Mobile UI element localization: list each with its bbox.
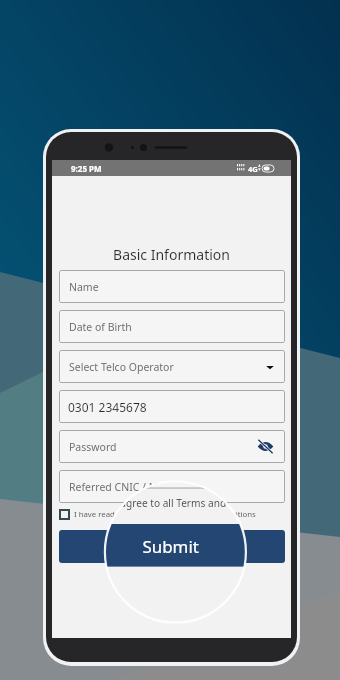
- button[interactable]: 0301 2345678: [59, 390, 285, 423]
- staticText: 9:25 PM: [71, 163, 102, 174]
- button[interactable]: Submit: [105, 524, 246, 567]
- staticText: 4G: [248, 164, 258, 174]
- button[interactable]: Referred CNIC / Mobile No.: [59, 470, 285, 503]
- button[interactable]: Referred CNIC / Mobile No.: [105, 482, 246, 489]
- button[interactable]: Date of Birth: [59, 310, 285, 343]
- staticText: I have read and agree to all Terms and C…: [74, 509, 256, 520]
- button[interactable]: I have read and agree to all Terms and C…: [105, 494, 246, 512]
- button[interactable]: Name: [59, 270, 285, 303]
- staticText: Basic Information: [52, 245, 291, 264]
- staticText: I have read and agree to all Terms and C…: [105, 497, 246, 511]
- button[interactable]: Toggle password visibility: [257, 438, 274, 455]
- staticText: 0301 2345678: [68, 399, 147, 415]
- button[interactable]: Password: [59, 430, 285, 463]
- staticText: Password: [69, 440, 117, 454]
- button[interactable]: Open operator list: [264, 361, 276, 373]
- button[interactable]: I have read and agree to all Terms and C…: [59, 507, 285, 521]
- staticText: Submit: [150, 538, 194, 556]
- staticText: Date of Birth: [69, 320, 132, 334]
- staticText: Name: [69, 280, 99, 294]
- button[interactable]: Select Telco Operator: [59, 350, 285, 383]
- staticText: Select Telco Operator: [69, 360, 174, 374]
- staticText: Referred CNIC / Mobile No.: [69, 480, 203, 494]
- staticText: Submit: [142, 534, 200, 558]
- button[interactable]: Submit: [59, 530, 285, 563]
